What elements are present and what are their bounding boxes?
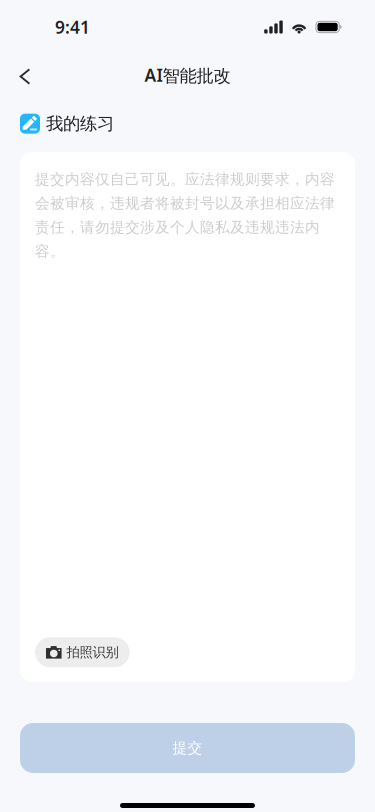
staticText: 我的练习 [46, 113, 114, 134]
staticText: 提交 [172, 739, 202, 757]
staticText: 9:41 [55, 15, 90, 38]
button[interactable]: 提交 [20, 723, 355, 773]
staticText: 拍照识别 [67, 644, 119, 660]
staticText: 提交内容仅自己可见。应法律规则要求，内容会被审核，违规者将被封号以及承担相应法律… [35, 170, 335, 260]
button[interactable]: Back [3, 54, 47, 96]
button[interactable]: 拍照识别 [35, 637, 130, 667]
staticText: AI智能批改 [144, 63, 230, 86]
button[interactable]: 提交内容仅自己可见。应法律规则要求，内容会被审核，违规者将被封号以及承担相应法律… [20, 152, 355, 682]
